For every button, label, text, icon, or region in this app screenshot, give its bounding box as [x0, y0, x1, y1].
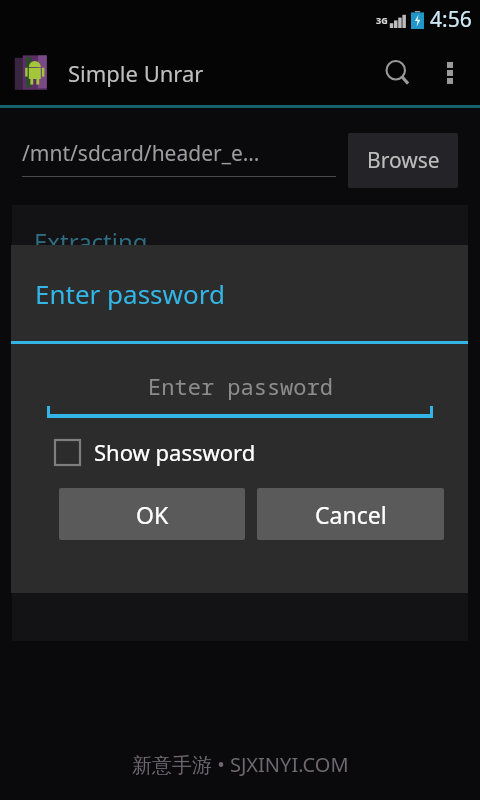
staticText: Extracting	[34, 225, 148, 258]
staticText: 新意手游 • SJXINYI.COM	[132, 751, 349, 778]
staticText: /mnt/sdcard/header_e…	[22, 139, 260, 168]
button[interactable]: Search	[368, 38, 428, 108]
staticText: OK	[136, 499, 169, 530]
button[interactable]: More options	[428, 38, 472, 108]
staticText: Show password	[94, 437, 256, 467]
button[interactable]: OK	[59, 488, 245, 540]
staticText: Enter password	[35, 276, 225, 311]
staticText: 3G	[376, 14, 388, 26]
button[interactable]: Cancel	[257, 488, 444, 540]
staticText: Enter password	[148, 371, 333, 401]
staticText: Browse	[367, 146, 440, 175]
staticText: Simple Unrar	[68, 58, 204, 88]
staticText: 4:56	[430, 5, 472, 34]
button[interactable]: Show password	[55, 430, 256, 474]
staticText: Cancel	[315, 499, 387, 530]
button[interactable]: Browse	[348, 133, 458, 188]
